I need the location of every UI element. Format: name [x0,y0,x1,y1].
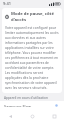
button[interactable]: Samsung Flow [0,101,64,110]
staticText: Votre appareil est configuré pour limite… [5,25,59,90]
staticText: Appareil en cours d'utilisation [4,96,48,100]
button[interactable]: Accueil [28,112,36,120]
staticText: Samsung Flow [4,104,32,107]
staticText: Mode de pause, côté d'accès [11,11,59,23]
other: Synchronisation en cours [53,104,60,107]
staticText: 9:41 [3,1,11,6]
other: Information [5,15,9,19]
button[interactable]: Applications récentes [50,112,58,120]
button[interactable]: Retour [6,112,14,120]
